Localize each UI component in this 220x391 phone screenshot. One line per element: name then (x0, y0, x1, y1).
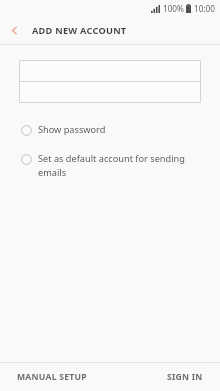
staticText: 10:00 (194, 3, 215, 14)
button[interactable]: MANUAL SETUP (0, 363, 104, 391)
staticText: ADD NEW ACCOUNT (32, 24, 127, 37)
staticText: Set as default account for sending email… (38, 152, 194, 178)
staticText: MANUAL SETUP (17, 371, 87, 383)
button[interactable]: Email address field (19, 60, 201, 82)
staticText: 100% (163, 3, 184, 14)
staticText: SIGN IN (167, 371, 203, 383)
button[interactable]: Show password (0, 117, 220, 143)
button[interactable]: Set as default account for sending email… (0, 146, 220, 183)
staticText: Show password (38, 123, 106, 136)
button[interactable]: SIGN IN (150, 363, 220, 391)
button[interactable]: Password field (19, 81, 201, 103)
button[interactable]: Navigate up (0, 16, 28, 44)
